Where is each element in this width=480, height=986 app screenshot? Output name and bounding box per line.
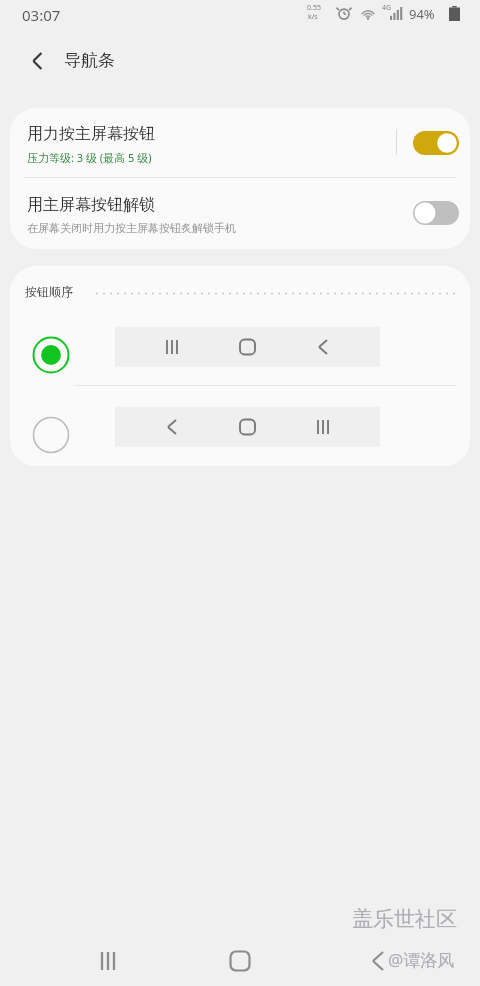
staticText: 用主屏幕按钮解锁 bbox=[27, 195, 155, 215]
staticText: 0.55 bbox=[307, 3, 321, 13]
staticText: 在屏幕关闭时用力按主屏幕按钮炙解锁手机 bbox=[27, 221, 236, 235]
button[interactable]: Recents bbox=[78, 941, 138, 981]
button[interactable]: 用力按主屏幕按钮 bbox=[10, 108, 470, 177]
staticText: 按钮顺序 bbox=[25, 284, 73, 299]
button[interactable]: Toggle off bbox=[413, 201, 459, 225]
staticText: @谭洛风 bbox=[388, 948, 455, 971]
staticText: 压力等级: 3 级 (最高 5 级) bbox=[27, 150, 152, 165]
staticText: 03:07 bbox=[22, 5, 61, 25]
button[interactable]: Home bbox=[210, 941, 270, 981]
button[interactable]: 用主屏幕按钮解锁 bbox=[10, 178, 470, 249]
button[interactable]: Back bbox=[18, 40, 60, 82]
staticText: 导航条 bbox=[64, 50, 115, 71]
staticText: 4G bbox=[382, 3, 392, 13]
staticText: 用力按主屏幕按钮 bbox=[27, 124, 155, 144]
staticText: k/s bbox=[308, 12, 318, 22]
button[interactable]: Back bbox=[348, 941, 408, 981]
button[interactable] bbox=[10, 398, 470, 456]
staticText: 盖乐世社区 bbox=[352, 906, 457, 932]
button[interactable]: Toggle on bbox=[413, 131, 459, 155]
staticText: 94% bbox=[409, 5, 435, 23]
button[interactable] bbox=[10, 318, 470, 376]
